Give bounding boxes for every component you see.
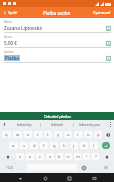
button[interactable]: . [90, 164, 97, 171]
staticText: Suma [4, 35, 12, 39]
button[interactable]: Emoji [79, 164, 88, 171]
button[interactable]: ? [92, 153, 99, 160]
staticText: z [19, 154, 21, 160]
button[interactable]: Currency [105, 40, 111, 46]
button[interactable]: l [90, 142, 98, 149]
button[interactable]: Meno [0, 18, 114, 33]
button[interactable]: o [84, 131, 92, 138]
staticText: c [39, 154, 42, 160]
staticText: lektorik [51, 122, 63, 127]
staticText: r [37, 132, 39, 138]
staticText: t [47, 132, 49, 138]
staticText: o [87, 132, 90, 138]
button[interactable]: lektorsky [9, 120, 40, 129]
button[interactable]: Vymazať [90, 8, 114, 18]
button[interactable]: y [54, 131, 62, 138]
staticText: p [97, 132, 100, 138]
staticText: d [33, 143, 36, 149]
button[interactable]: n [65, 153, 72, 160]
staticText: Zuzana Liptovská [4, 25, 42, 31]
staticText: x [29, 154, 32, 160]
button[interactable]: h [60, 142, 68, 149]
staticText: m [76, 154, 80, 160]
staticText: e [27, 132, 30, 138]
button[interactable]: m [74, 153, 81, 160]
button[interactable]: Contacts [105, 25, 111, 31]
staticText: Správa [4, 50, 14, 54]
button[interactable]: ?123 [2, 164, 16, 171]
staticText: lektorsky you [79, 122, 101, 127]
staticText: Meno [4, 20, 12, 24]
button[interactable]: Shift [2, 153, 14, 160]
staticText: b [58, 154, 61, 160]
button[interactable]: k [80, 142, 88, 149]
staticText: ?123 [6, 166, 13, 170]
button[interactable]: Odoslať platbu [0, 112, 114, 120]
button[interactable]: Back [16, 174, 24, 182]
other: Back [3, 11, 7, 15]
button[interactable]: Recents [65, 174, 73, 182]
button[interactable]: lektorsky you [74, 120, 106, 129]
staticText: k [83, 143, 86, 149]
staticText: i [77, 132, 79, 138]
button[interactable]: d [30, 142, 38, 149]
staticText: s [23, 143, 26, 149]
button[interactable]: f [40, 142, 48, 149]
staticText: g [53, 143, 56, 149]
staticText: ? [95, 154, 97, 160]
button[interactable]: Clear [105, 55, 111, 61]
button[interactable]: w [13, 131, 22, 138]
staticText: q [5, 132, 8, 138]
staticText: a [12, 143, 15, 149]
button[interactable]: x [26, 153, 34, 160]
button[interactable]: SK [99, 164, 112, 171]
button[interactable]: q [2, 131, 11, 138]
button[interactable]: c [36, 153, 44, 160]
button[interactable]: Backspace [104, 131, 112, 138]
button[interactable]: Enter [100, 142, 112, 149]
button[interactable]: Voice input [0, 120, 9, 129]
staticText: v [49, 154, 52, 160]
staticText: Vymazať [93, 10, 111, 16]
button[interactable]: b [56, 153, 63, 160]
staticText: lektorsky [17, 122, 32, 127]
button[interactable]: t [44, 131, 52, 138]
staticText: , [21, 165, 23, 170]
button[interactable]: s [20, 142, 28, 149]
button[interactable]: u [64, 131, 72, 138]
staticText: . [93, 165, 95, 170]
staticText: y [57, 132, 60, 138]
button[interactable]: More suggestions [106, 120, 114, 129]
button[interactable]: Suma [0, 33, 114, 48]
button[interactable]: Správa [0, 48, 114, 63]
button[interactable]: v [46, 153, 54, 160]
staticText: u [67, 132, 70, 138]
button[interactable]: e [24, 131, 32, 138]
staticText: j [73, 143, 75, 149]
staticText: ! [86, 154, 88, 160]
button[interactable]: ! [83, 153, 90, 160]
button[interactable]: a [9, 142, 18, 149]
button[interactable]: j [70, 142, 78, 149]
button[interactable]: p [94, 131, 102, 138]
staticText: 5,00 € [4, 40, 17, 46]
button[interactable]: z [16, 153, 24, 160]
staticText: Platba osobe [43, 10, 71, 16]
button[interactable]: i [74, 131, 82, 138]
button[interactable]: Back [0, 8, 20, 18]
staticText: Odoslať platbu [44, 114, 71, 119]
staticText: h [63, 143, 66, 149]
button[interactable]: Keyboard toggle [90, 174, 98, 182]
staticText: w [16, 132, 20, 138]
staticText: SK [104, 166, 108, 170]
button[interactable]: Shift [101, 153, 112, 160]
staticText: Platba [5, 55, 19, 61]
button[interactable]: g [50, 142, 58, 149]
button[interactable]: Home [41, 174, 49, 182]
staticText: l [93, 143, 95, 149]
staticText: Späť [8, 10, 17, 16]
button[interactable]: lektorik [41, 120, 73, 129]
button[interactable]: , [18, 164, 25, 171]
button[interactable]: r [34, 131, 42, 138]
